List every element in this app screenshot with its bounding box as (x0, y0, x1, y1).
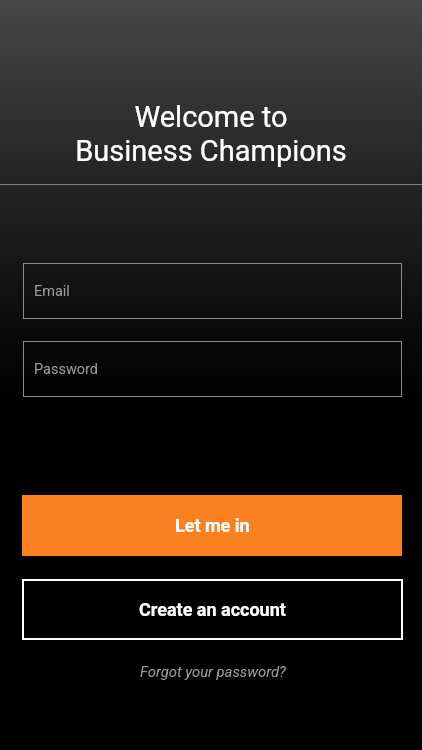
staticText: Create an account (139, 599, 286, 620)
staticText: Email (34, 283, 70, 300)
staticText: Let me in (175, 515, 250, 536)
button[interactable]: Let me in (22, 495, 402, 556)
button[interactable]: Forgot your password? (130, 658, 296, 685)
button[interactable]: Create an account (22, 579, 403, 640)
staticText: Business Champions (75, 134, 347, 168)
button[interactable]: Email (23, 263, 402, 319)
button[interactable]: Password (23, 341, 402, 397)
staticText: Welcome to (134, 100, 288, 134)
staticText: Password (34, 361, 99, 378)
